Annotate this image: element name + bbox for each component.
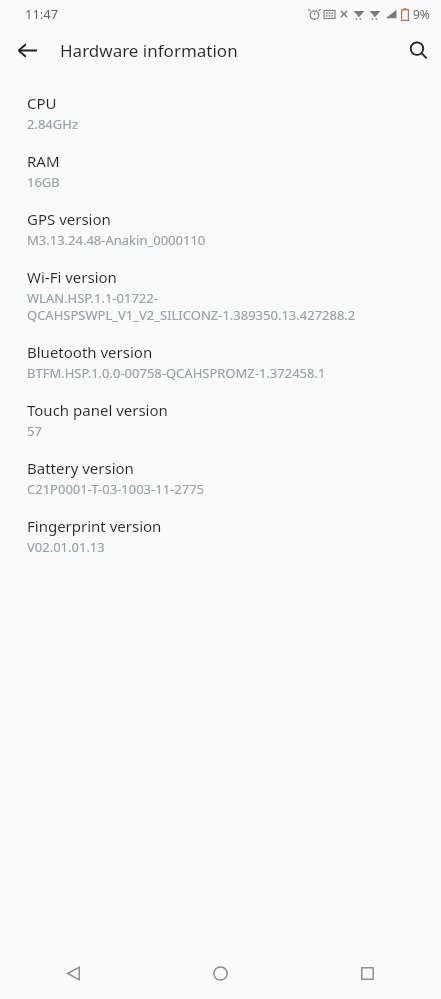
button[interactable]: Back <box>5 28 49 72</box>
staticText: RAM <box>27 151 60 171</box>
staticText: CPU <box>27 93 57 113</box>
button[interactable]: Home <box>147 947 294 999</box>
button[interactable]: Search <box>396 28 440 72</box>
staticText: Battery version <box>27 458 134 478</box>
button[interactable]: Wi-Fi version <box>0 258 441 333</box>
staticText: 9% <box>413 6 430 22</box>
staticText: 16GB <box>27 173 60 191</box>
staticText: Touch panel version <box>27 400 168 420</box>
staticText: 2.84GHz <box>27 115 78 133</box>
staticText: 11:47 <box>25 5 59 23</box>
button[interactable]: CPU <box>0 84 441 142</box>
button[interactable]: Recent apps <box>294 947 441 999</box>
staticText: Wi-Fi version <box>27 267 117 287</box>
button[interactable]: Touch panel version <box>0 391 441 449</box>
staticText: C21P0001-T-03-1003-11-2775 <box>27 480 205 498</box>
button[interactable]: Bluetooth version <box>0 333 441 391</box>
staticText: Bluetooth version <box>27 342 153 362</box>
button[interactable]: RAM <box>0 142 441 200</box>
button[interactable]: Fingerprint version <box>0 507 441 565</box>
staticText: V02.01.01.13 <box>27 538 105 556</box>
staticText: BTFM.HSP.1.0.0-00758-QCAHSPROMZ-1.372458… <box>27 364 326 382</box>
staticText: Fingerprint version <box>27 516 162 536</box>
button[interactable]: Back <box>0 947 147 999</box>
staticText: M3.13.24.48-Anakin_0000110 <box>27 231 206 249</box>
staticText: Hardware information <box>60 39 238 62</box>
staticText: 57 <box>27 422 42 440</box>
button[interactable]: Battery version <box>0 449 441 507</box>
staticText: WLAN.HSP.1.1-01722-QCAHSPSWPL_V1_V2_SILI… <box>27 289 427 324</box>
staticText: GPS version <box>27 209 111 229</box>
button[interactable]: GPS version <box>0 200 441 258</box>
